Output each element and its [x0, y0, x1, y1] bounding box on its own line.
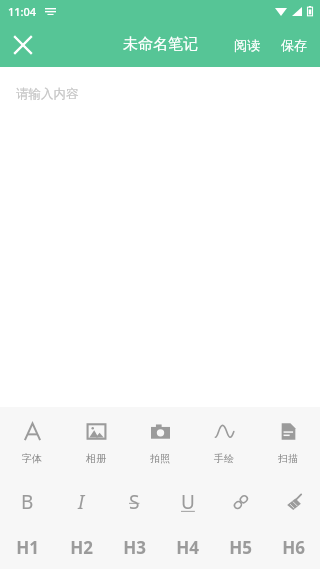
staticText: I [78, 489, 85, 515]
button[interactable]: S [108, 479, 161, 525]
staticText: 保存 [281, 37, 307, 53]
button[interactable]: 保存 [271, 22, 320, 67]
staticText: 阅读 [234, 37, 260, 53]
button[interactable]: 相册 [64, 407, 128, 479]
button[interactable]: H6 [267, 525, 320, 569]
staticText: H4 [176, 536, 199, 559]
button[interactable]: Clear formatting [267, 479, 320, 525]
staticText: 相册 [86, 452, 106, 465]
staticText: 扫描 [278, 452, 298, 465]
staticText: H1 [16, 536, 39, 559]
staticText: 请输入内容 [16, 86, 79, 102]
staticText: 拍照 [150, 452, 170, 465]
button[interactable]: H1 [0, 525, 54, 569]
button[interactable]: 手绘 [192, 407, 256, 479]
staticText: U [181, 489, 195, 515]
staticText: 字体 [22, 452, 42, 465]
button[interactable]: 拍照 [128, 407, 192, 479]
button[interactable]: H2 [54, 525, 108, 569]
button[interactable]: Close [0, 22, 45, 67]
button[interactable]: Insert link [214, 479, 267, 525]
staticText: 11:04 [8, 4, 37, 19]
button[interactable]: 阅读 [223, 22, 271, 67]
button[interactable]: H4 [161, 525, 214, 569]
staticText: H3 [123, 536, 146, 559]
staticText: H2 [70, 536, 93, 559]
staticText: 手绘 [214, 452, 234, 465]
button[interactable]: H3 [108, 525, 161, 569]
button[interactable]: H5 [214, 525, 267, 569]
staticText: B [21, 489, 34, 515]
button[interactable]: 字体 [0, 407, 64, 479]
button[interactable]: U [161, 479, 214, 525]
button[interactable]: B [0, 479, 54, 525]
button[interactable]: I [54, 479, 108, 525]
staticText: H5 [229, 536, 252, 559]
button[interactable]: 扫描 [256, 407, 320, 479]
staticText: S [129, 489, 140, 515]
staticText: 未命名笔记 [123, 35, 198, 54]
staticText: H6 [282, 536, 305, 559]
